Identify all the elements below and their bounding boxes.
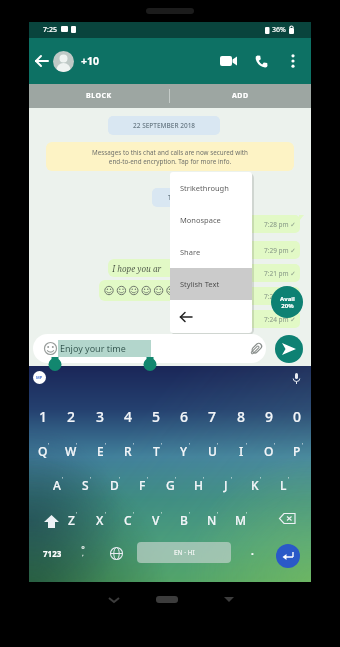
staticText: K bbox=[251, 477, 259, 493]
button[interactable]: K bbox=[241, 473, 269, 497]
button[interactable]: 7 bbox=[198, 404, 226, 428]
button[interactable]: 4 bbox=[114, 404, 142, 428]
staticText: o , bbox=[81, 544, 85, 557]
button[interactable]: 8 bbox=[227, 404, 255, 428]
staticText: 36% bbox=[272, 25, 286, 35]
staticText: 6 bbox=[180, 407, 189, 426]
button[interactable]: 2 bbox=[57, 404, 85, 428]
staticText: ' bbox=[175, 475, 177, 483]
button[interactable]: Z bbox=[57, 508, 85, 532]
staticText: 0 bbox=[293, 407, 302, 426]
button[interactable] bbox=[275, 335, 303, 363]
staticText: O bbox=[264, 443, 274, 459]
button[interactable]: C bbox=[114, 508, 142, 532]
staticText: Y bbox=[180, 443, 188, 459]
button[interactable]: Q bbox=[29, 439, 57, 463]
staticText: 1 bbox=[39, 407, 48, 426]
button[interactable]: X bbox=[86, 508, 114, 532]
staticText: G bbox=[166, 477, 175, 493]
button[interactable]: B bbox=[170, 508, 198, 532]
staticText: Z bbox=[68, 512, 75, 528]
button[interactable]: R bbox=[114, 439, 142, 463]
staticText: T bbox=[153, 443, 160, 459]
button[interactable] bbox=[247, 47, 275, 75]
button[interactable] bbox=[283, 46, 303, 76]
button[interactable]: M bbox=[227, 508, 255, 532]
button[interactable]: I bbox=[227, 439, 255, 463]
button[interactable]: ADD bbox=[170, 84, 311, 108]
staticText: 7:25 bbox=[43, 25, 57, 35]
button[interactable]: Share bbox=[170, 236, 252, 268]
button[interactable]: V bbox=[142, 508, 170, 532]
staticText: ' bbox=[161, 441, 163, 449]
staticText: ' bbox=[119, 475, 121, 483]
staticText: U bbox=[208, 443, 217, 459]
staticText: ' bbox=[217, 441, 219, 449]
button[interactable]: S bbox=[71, 473, 99, 497]
staticText: J bbox=[224, 477, 228, 493]
button[interactable]: EN · HI bbox=[137, 542, 231, 563]
staticText: 4 bbox=[124, 407, 133, 426]
staticText: ' bbox=[288, 475, 290, 483]
button[interactable]: Y bbox=[170, 439, 198, 463]
button[interactable]: 6 bbox=[170, 404, 198, 428]
button[interactable] bbox=[170, 300, 252, 333]
button[interactable]: W bbox=[57, 439, 85, 463]
button[interactable]: 1 bbox=[29, 404, 57, 428]
staticText: Avail 20% bbox=[280, 295, 295, 310]
button[interactable]: F bbox=[128, 473, 156, 497]
staticText: M bbox=[235, 512, 247, 528]
staticText: ' bbox=[189, 441, 191, 449]
staticText: N bbox=[207, 512, 217, 528]
button[interactable]: A bbox=[43, 473, 71, 497]
staticText: V bbox=[152, 512, 160, 528]
staticText: C bbox=[124, 512, 132, 528]
button[interactable]: Messages to this chat and calls are now … bbox=[46, 142, 294, 171]
staticText: Strikethrough bbox=[180, 183, 229, 193]
button[interactable]: 0 bbox=[283, 404, 311, 428]
staticText: S bbox=[82, 477, 89, 493]
staticText: ' bbox=[76, 510, 78, 518]
button[interactable]: L bbox=[269, 473, 297, 497]
staticText: 5 bbox=[152, 407, 161, 426]
button[interactable]: 9 bbox=[255, 404, 283, 428]
button[interactable]: Stylish Text bbox=[170, 268, 252, 300]
button[interactable]: 5 bbox=[142, 404, 170, 428]
staticText: BLOCK bbox=[86, 91, 112, 101]
button[interactable]: Strikethrough bbox=[170, 172, 252, 204]
button[interactable]: BLOCK bbox=[29, 84, 169, 108]
button[interactable]: N bbox=[198, 508, 226, 532]
staticText: 9 bbox=[265, 407, 274, 426]
staticText: ' bbox=[161, 510, 163, 518]
button[interactable]: J bbox=[212, 473, 240, 497]
button[interactable]: T bbox=[142, 439, 170, 463]
staticText: I bbox=[239, 443, 244, 459]
staticText: 8 bbox=[237, 407, 246, 426]
staticText: ' bbox=[76, 441, 78, 449]
staticText: . bbox=[251, 544, 254, 558]
button[interactable]: H bbox=[184, 473, 212, 497]
staticText: 7123 bbox=[43, 548, 62, 559]
staticText: ' bbox=[133, 441, 135, 449]
staticText: ' bbox=[203, 475, 205, 483]
button[interactable]: P bbox=[283, 439, 311, 463]
button[interactable]: O bbox=[255, 439, 283, 463]
staticText: 22 SEPTEMBER 2018 bbox=[133, 121, 196, 130]
staticText: 7 bbox=[208, 407, 217, 426]
staticText: MP bbox=[36, 375, 43, 380]
button[interactable]: D bbox=[100, 473, 128, 497]
staticText: F bbox=[139, 477, 146, 493]
button[interactable]: Monospace bbox=[170, 204, 252, 236]
button[interactable]: 3 bbox=[86, 404, 114, 428]
button[interactable] bbox=[276, 544, 300, 568]
button[interactable]: G bbox=[156, 473, 184, 497]
staticText: 7:29 pm ✓ bbox=[264, 246, 296, 255]
staticText: 3 bbox=[96, 407, 105, 426]
button[interactable] bbox=[33, 334, 266, 363]
button[interactable] bbox=[213, 46, 243, 76]
staticText: ' bbox=[246, 441, 248, 449]
button[interactable]: U bbox=[198, 439, 226, 463]
button[interactable]: E bbox=[86, 439, 114, 463]
staticText: EN · HI bbox=[174, 548, 195, 557]
staticText: TODAY bbox=[168, 193, 189, 202]
